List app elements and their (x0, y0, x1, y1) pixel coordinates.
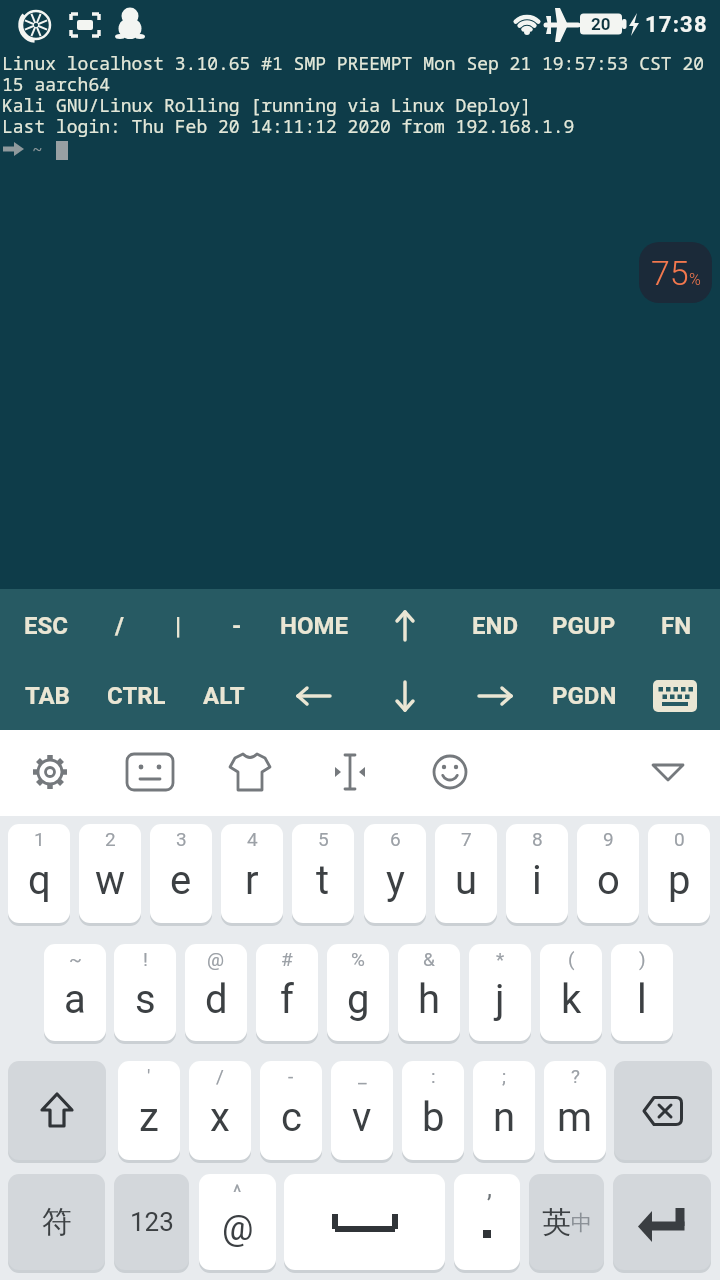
staticText: 75 (651, 253, 689, 293)
staticText: 中 (571, 1210, 592, 1236)
staticText: h (418, 976, 441, 1023)
staticText: ALT (203, 682, 245, 710)
button[interactable]: : (402, 1061, 464, 1160)
staticText: q (28, 857, 51, 904)
button[interactable] (361, 661, 449, 731)
staticText: 123 (130, 1207, 174, 1237)
button[interactable]: 4 (221, 824, 283, 923)
button[interactable]: 英 (529, 1174, 604, 1270)
staticText: % (689, 270, 701, 289)
staticText: k (561, 976, 582, 1023)
button[interactable]: 7 (435, 824, 497, 923)
button[interactable]: HOME (270, 591, 358, 661)
button[interactable]: | (134, 591, 222, 661)
button[interactable]: 符 (8, 1174, 105, 1270)
staticText: , (487, 1174, 492, 1203)
staticText: 1 (34, 828, 45, 850)
button[interactable]: / (189, 1061, 251, 1160)
button[interactable]: # (256, 944, 318, 1041)
button[interactable]: 3 (150, 824, 212, 923)
staticText: 6 (390, 828, 401, 850)
staticText: ' (147, 1065, 151, 1087)
staticText: Last login: Thu Feb 20 14:11:12 2020 fro… (2, 114, 575, 139)
staticText: Kali GNU/Linux Rolling [running via Linu… (2, 93, 532, 118)
staticText: # (281, 948, 293, 970)
button[interactable] (614, 1061, 712, 1160)
button[interactable] (320, 742, 380, 802)
button[interactable]: ( (540, 944, 602, 1041)
button[interactable]: , (454, 1174, 520, 1270)
button[interactable] (220, 742, 280, 802)
staticText: ( (568, 948, 575, 970)
button[interactable] (451, 661, 539, 731)
button[interactable] (361, 591, 449, 661)
staticText: 5 (318, 828, 329, 850)
staticText: @ (222, 1208, 254, 1249)
button[interactable]: 8 (506, 824, 568, 923)
button[interactable]: - (260, 1061, 322, 1160)
button[interactable]: ALT (180, 661, 268, 731)
staticText: 2 (105, 828, 116, 850)
button[interactable]: _ (331, 1061, 393, 1160)
staticText: ) (639, 948, 646, 970)
staticText: FN (661, 612, 692, 640)
button[interactable]: 6 (364, 824, 426, 923)
staticText: f (280, 976, 294, 1023)
button[interactable]: @ (185, 944, 247, 1041)
button[interactable]: FN (632, 591, 720, 661)
button[interactable] (120, 742, 180, 802)
staticText: r (245, 857, 259, 904)
button[interactable]: ' (118, 1061, 180, 1160)
staticText: 0 (674, 828, 685, 850)
button[interactable] (270, 661, 358, 731)
button[interactable]: CTRL (92, 661, 180, 731)
button[interactable] (638, 742, 698, 802)
button[interactable] (613, 1174, 711, 1270)
button[interactable]: 0 (648, 824, 710, 923)
button[interactable]: ? (544, 1061, 606, 1160)
button[interactable]: - (193, 591, 281, 661)
staticText: g (347, 976, 370, 1023)
staticText: : (431, 1065, 436, 1087)
button[interactable]: 9 (577, 824, 639, 923)
staticText: d (205, 976, 228, 1023)
button[interactable] (284, 1174, 445, 1270)
staticText: * (496, 948, 505, 970)
button[interactable]: ; (473, 1061, 535, 1160)
button[interactable] (20, 742, 80, 802)
staticText: a (64, 976, 86, 1023)
staticText: i (532, 857, 542, 904)
button[interactable] (8, 1061, 106, 1160)
button[interactable]: / (75, 591, 163, 661)
staticText: ! (143, 948, 148, 970)
button[interactable]: 5 (292, 824, 354, 923)
button[interactable]: 123 (114, 1174, 189, 1270)
staticText: n (493, 1094, 516, 1141)
button[interactable]: ~ (44, 944, 106, 1041)
button[interactable]: PGDN (540, 661, 628, 731)
button[interactable]: ! (114, 944, 176, 1041)
button[interactable]: 1 (8, 824, 70, 923)
button[interactable]: TAB (3, 661, 91, 731)
button[interactable] (420, 742, 480, 802)
button[interactable]: & (398, 944, 460, 1041)
button[interactable]: ) (611, 944, 673, 1041)
staticText: - (288, 1065, 294, 1087)
staticText: END (472, 612, 519, 640)
button[interactable]: END (451, 591, 539, 661)
button[interactable]: * (469, 944, 531, 1041)
staticText: & (423, 948, 435, 970)
staticText: ~ (32, 137, 43, 162)
staticText: CTRL (107, 682, 166, 710)
staticText: w (95, 857, 126, 904)
button[interactable]: ^ (199, 1174, 276, 1270)
button[interactable] (631, 661, 719, 731)
button[interactable]: 2 (79, 824, 141, 923)
button[interactable]: PGUP (540, 591, 628, 661)
staticText: HOME (280, 612, 349, 640)
button[interactable]: % (327, 944, 389, 1041)
staticText: y (386, 857, 405, 904)
staticText: @ (207, 948, 225, 970)
button[interactable]: ESC (2, 591, 90, 661)
staticText: Linux localhost 3.10.65 #1 SMP PREEMPT M… (2, 51, 704, 76)
